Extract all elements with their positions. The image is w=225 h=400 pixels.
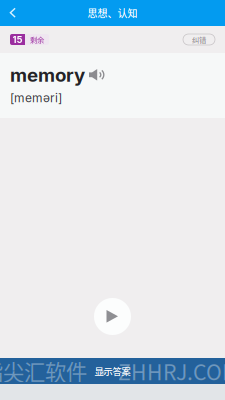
staticText: 15 bbox=[12, 34, 22, 45]
button[interactable]: 指尖汇软件 · ZHHRJ.COM bbox=[0, 358, 225, 384]
button[interactable]: Back bbox=[0, 0, 26, 26]
staticText: 显示答案 bbox=[94, 364, 130, 378]
button[interactable]: Pronounce word bbox=[89, 69, 106, 81]
staticText: 剩余 bbox=[30, 34, 44, 45]
button[interactable]: 15 bbox=[10, 34, 49, 45]
button[interactable]: Play audio bbox=[94, 298, 131, 335]
staticText: 纠错 bbox=[192, 34, 206, 45]
staticText: 指尖汇软件 · ZHHRJ.COM bbox=[0, 356, 225, 386]
staticText: [meməri] bbox=[10, 91, 62, 105]
staticText: memory bbox=[10, 64, 85, 86]
staticText: 思想、认知 bbox=[87, 6, 137, 20]
button[interactable]: 纠错 bbox=[183, 34, 215, 45]
